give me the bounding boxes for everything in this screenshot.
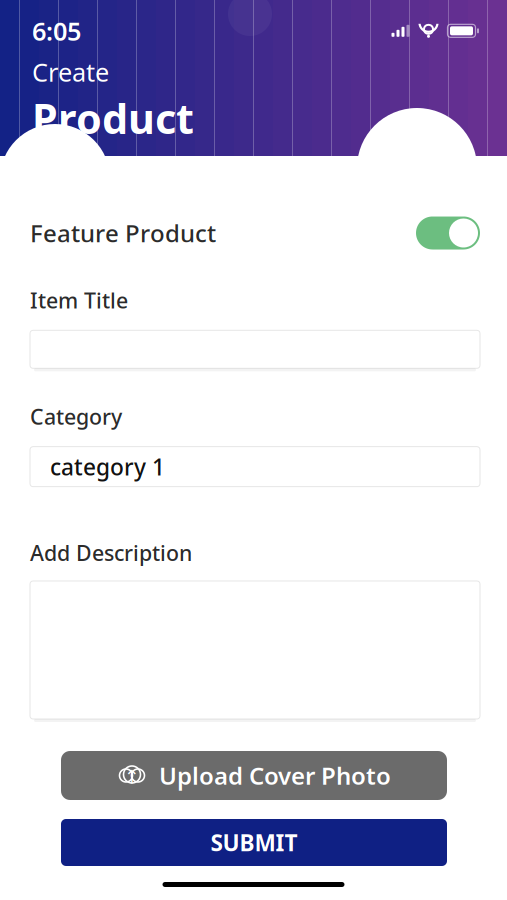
- staticText: SUBMIT: [210, 827, 297, 857]
- button[interactable]: [30, 330, 480, 368]
- staticText: Category: [30, 402, 122, 431]
- button[interactable]: category 1: [30, 447, 480, 487]
- staticText: Upload Cover Photo: [159, 760, 391, 791]
- button[interactable]: Feature Product toggle: [416, 216, 480, 249]
- staticText: Feature Product: [30, 217, 216, 249]
- button[interactable]: ↑: [61, 751, 447, 800]
- staticText: Item Title: [30, 286, 128, 314]
- staticText: 6:05: [32, 14, 81, 48]
- button[interactable]: SUBMIT: [61, 819, 447, 866]
- staticText: Add Description: [30, 539, 192, 567]
- button[interactable]: Feature Product: [30, 216, 480, 250]
- staticText: Product: [32, 91, 194, 145]
- staticText: category 1: [50, 452, 165, 482]
- staticText: Create: [32, 55, 109, 89]
- staticText: ↑: [124, 766, 140, 788]
